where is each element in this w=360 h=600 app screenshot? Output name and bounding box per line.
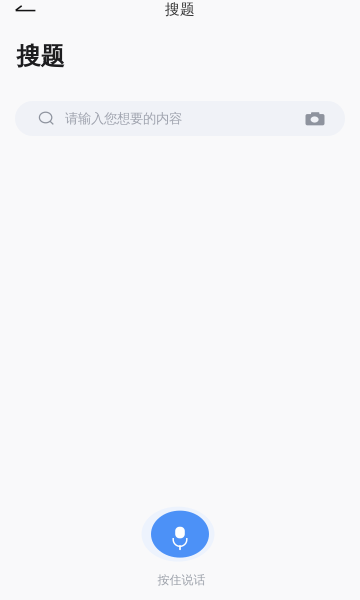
button[interactable]: 请输入您想要的内容 (15, 101, 345, 136)
staticText: 按住说话 (157, 573, 205, 587)
button[interactable]: 按住说话 (141, 507, 214, 587)
staticText: 搜题 (165, 0, 195, 18)
staticText: 请输入您想要的内容 (65, 110, 182, 127)
staticText: 搜题 (16, 41, 64, 71)
button[interactable]: 返回 (5, 0, 46, 19)
